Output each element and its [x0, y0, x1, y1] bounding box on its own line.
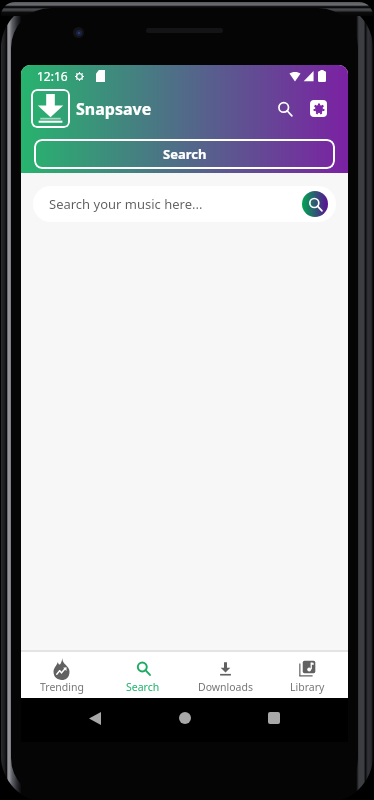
button[interactable]: Library: [266, 652, 348, 698]
staticText: Search your music here...: [49, 195, 203, 213]
button[interactable]: Search: [102, 652, 184, 698]
button[interactable]: Search your music here...: [33, 186, 336, 222]
button[interactable]: Back: [83, 706, 107, 730]
button[interactable]: Home: [172, 705, 197, 730]
staticText: Snapsave: [76, 98, 152, 120]
staticText: Search: [126, 680, 160, 694]
button[interactable]: Settings: [310, 100, 327, 117]
button[interactable]: Recents: [261, 705, 286, 730]
button[interactable]: Search: [302, 191, 328, 217]
button[interactable]: Search: [34, 139, 335, 169]
button[interactable]: Trending: [21, 652, 102, 698]
staticText: Trending: [40, 680, 84, 694]
staticText: Downloads: [198, 680, 253, 694]
staticText: Search: [163, 145, 207, 163]
staticText: Library: [290, 680, 325, 694]
button[interactable]: Downloads: [184, 652, 266, 698]
button[interactable]: Search: [272, 96, 298, 122]
staticText: 12:16: [37, 68, 68, 84]
